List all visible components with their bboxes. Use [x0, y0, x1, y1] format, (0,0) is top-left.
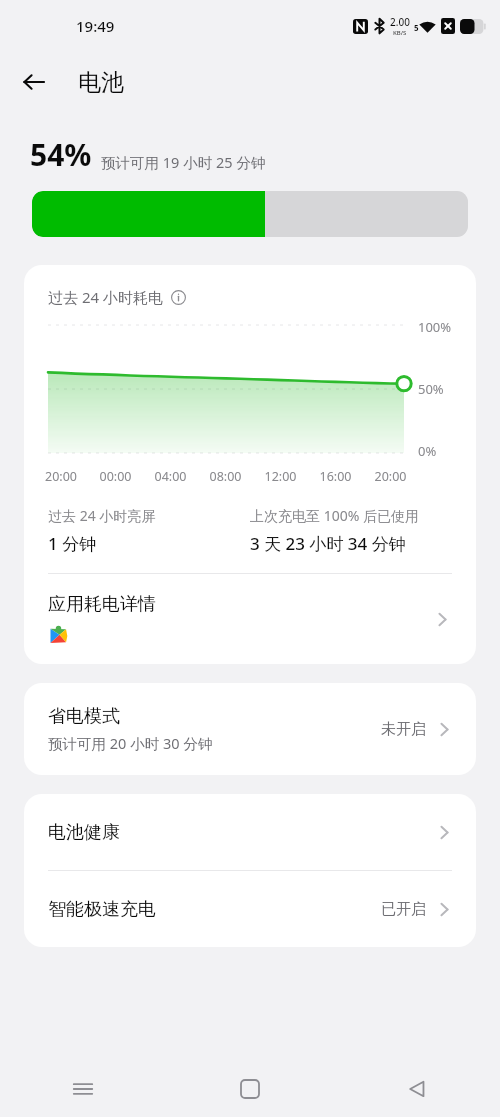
- staticText: KB/S: [393, 29, 407, 37]
- staticText: 5: [414, 22, 419, 33]
- staticText: 0%: [418, 442, 437, 460]
- button[interactable]: 返回: [10, 58, 58, 106]
- staticText: 电池: [78, 68, 124, 97]
- staticText: 04:00: [143, 468, 198, 485]
- staticText: 应用耗电详情: [48, 593, 156, 616]
- staticText: 19:49: [76, 16, 115, 36]
- staticText: 未开启: [381, 720, 426, 739]
- staticText: 预计可用 19 小时 25 分钟: [101, 152, 266, 172]
- staticText: 已开启: [381, 900, 426, 919]
- staticText: 上次充电至 100% 后已使用: [250, 506, 419, 525]
- staticText: 1 分钟: [48, 532, 97, 555]
- staticText: 2.00: [390, 15, 410, 29]
- button[interactable]: 主屏幕: [166, 1060, 333, 1117]
- staticText: 00:00: [88, 468, 143, 485]
- staticText: 54%: [30, 134, 92, 175]
- button[interactable]: 省电模式: [24, 683, 476, 775]
- button[interactable]: 过去 24 小时耗电: [48, 287, 186, 307]
- staticText: 过去 24 小时耗电: [48, 287, 163, 307]
- staticText: 智能极速充电: [48, 898, 156, 921]
- staticText: 电池健康: [48, 821, 120, 844]
- staticText: 20:00: [34, 468, 88, 485]
- staticText: 08:00: [198, 468, 253, 485]
- button[interactable]: 最近任务: [0, 1060, 166, 1117]
- staticText: 预计可用 20 小时 30 分钟: [48, 733, 213, 753]
- staticText: 12:00: [253, 468, 308, 485]
- button[interactable]: 返回: [333, 1060, 500, 1117]
- button[interactable]: 智能极速充电: [24, 871, 476, 947]
- staticText: 3 天 23 小时 34 分钟: [250, 532, 406, 555]
- staticText: 50%: [418, 380, 444, 398]
- button[interactable]: 电池健康: [24, 794, 476, 870]
- staticText: 16:00: [308, 468, 363, 485]
- staticText: 100%: [418, 318, 452, 336]
- staticText: 过去 24 小时亮屏: [48, 506, 156, 525]
- staticText: 省电模式: [48, 705, 120, 728]
- button[interactable]: 应用耗电详情: [24, 574, 476, 664]
- staticText: 20:00: [363, 468, 418, 485]
